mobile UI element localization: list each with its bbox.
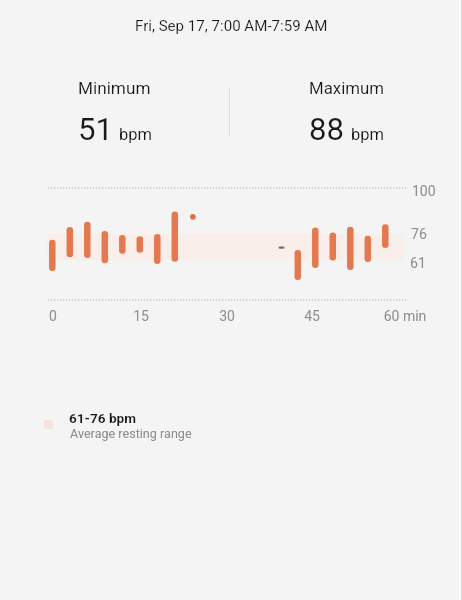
staticText: Average resting range <box>70 426 192 441</box>
staticText: 60 min <box>345 308 462 324</box>
staticText: 76 <box>411 226 427 243</box>
staticText: 88 <box>309 111 345 148</box>
staticText: 45 <box>252 308 372 324</box>
staticText: bpm <box>351 125 384 144</box>
staticText: Maximum <box>309 78 384 98</box>
staticText: 0 <box>0 308 113 324</box>
staticText: 30 <box>167 308 287 324</box>
staticText: Fri, Sep 17, 7:00 AM-7:59 AM <box>135 17 328 35</box>
button[interactable] <box>30 404 260 448</box>
staticText: 15 <box>81 308 201 324</box>
staticText: 61-76 bpm <box>69 410 136 426</box>
staticText: 100 <box>412 183 436 199</box>
staticText: Minimum <box>78 78 151 98</box>
other: Heart rate chart <box>0 0 462 600</box>
staticText: 51 <box>78 111 114 148</box>
staticText: 61 <box>410 255 426 272</box>
staticText: bpm <box>119 125 152 144</box>
